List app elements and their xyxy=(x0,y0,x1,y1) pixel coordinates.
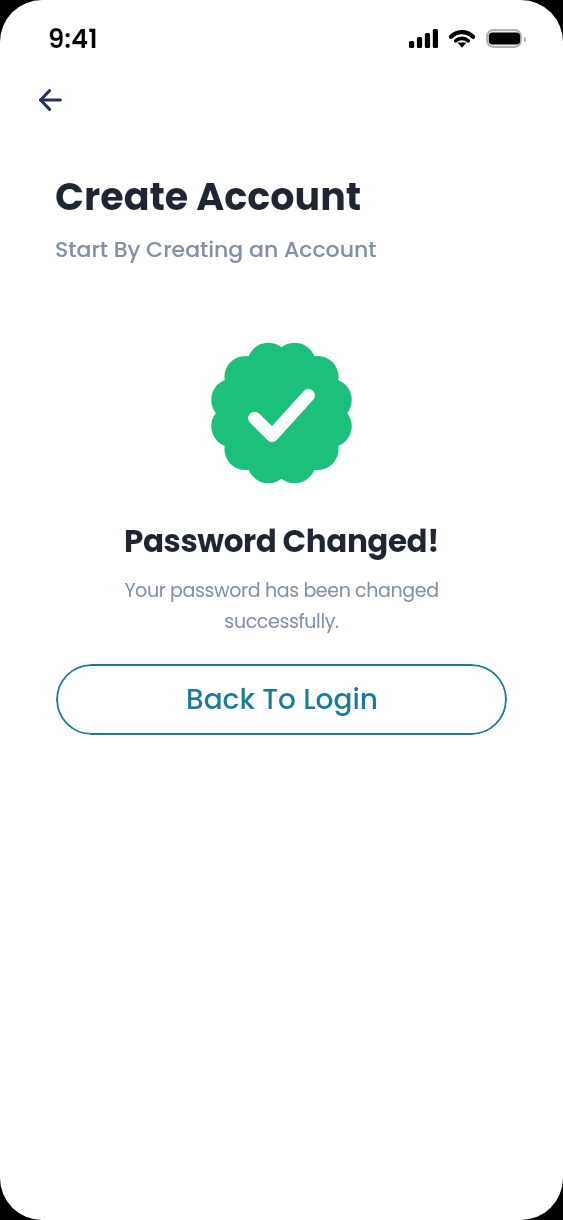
staticText: Start By Creating an Account xyxy=(55,234,377,265)
staticText: Password Changed! xyxy=(0,519,563,562)
staticText: Your password has been changed successfu… xyxy=(0,577,563,635)
button[interactable]: Back xyxy=(26,76,74,124)
staticText: Create Account xyxy=(55,170,362,223)
staticText: Back To Login xyxy=(186,680,378,719)
staticText: 9:41 xyxy=(48,21,98,57)
button[interactable]: Back To Login xyxy=(56,664,507,735)
